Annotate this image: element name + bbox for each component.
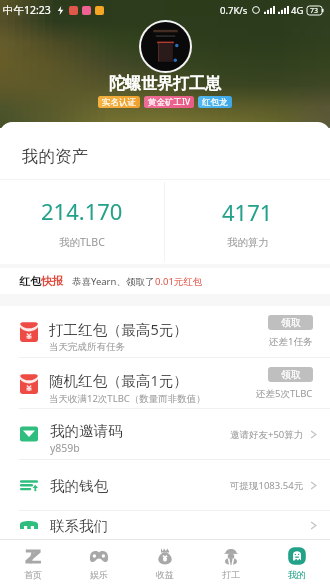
button[interactable]: 实名认证 (102, 96, 136, 108)
staticText: 恭喜Yearn、领取了 (72, 275, 155, 288)
staticText: 我的TLBC (59, 235, 105, 249)
button[interactable]: 4171 (165, 180, 330, 264)
button[interactable]: Profile avatar (141, 22, 190, 71)
staticText: 我的算力 (227, 236, 269, 249)
staticText: 打工红包（最高5元） (49, 319, 188, 339)
staticText: 首页 (24, 569, 42, 580)
staticText: 214.170 (41, 196, 123, 226)
staticText: 打工 (222, 569, 240, 580)
staticText: 随机红包（最高1元） (49, 370, 188, 390)
button[interactable]: 领取 (268, 367, 313, 382)
staticText: 娱乐 (90, 569, 108, 580)
staticText: 邀请好友+50算力 (230, 428, 304, 441)
staticText: 红包龙 (202, 97, 228, 108)
button[interactable]: 红包 (19, 268, 318, 294)
staticText: 0.01元红包 (155, 275, 203, 288)
staticText: 还差1任务 (269, 335, 313, 348)
staticText: 黄金矿工IV (148, 96, 190, 108)
button[interactable]: 我的邀请码 (20, 409, 317, 459)
staticText: 4171 (222, 197, 273, 227)
staticText: 4G (291, 4, 304, 17)
button[interactable]: 收益 (132, 540, 198, 584)
staticText: 当天收满12次TLBC（数量而非数值） (49, 392, 206, 405)
button[interactable]: 首页 (0, 540, 66, 584)
button[interactable]: 214.170 (0, 180, 164, 264)
staticText: 实名认证 (102, 97, 136, 108)
staticText: 陀螺世界打工崽 (0, 74, 330, 94)
staticText: 我的邀请码 (50, 422, 123, 440)
staticText: 0.7K/s (220, 4, 248, 17)
button[interactable]: 我的钱包 (20, 460, 317, 510)
staticText: 我的资产 (22, 146, 88, 167)
button[interactable]: 领取 (268, 315, 313, 330)
staticText: 红包 (19, 274, 41, 288)
staticText: y859b (50, 441, 80, 455)
staticText: 中午12:23 (3, 3, 51, 17)
staticText: 可提现1083.54元 (230, 479, 304, 492)
button[interactable]: 联系我们 (20, 511, 317, 539)
button[interactable]: 娱乐 (66, 540, 132, 584)
button[interactable]: 黄金矿工IV (148, 96, 190, 108)
button[interactable]: 红包龙 (202, 96, 228, 108)
button[interactable]: 随机红包（最高1元） (20, 358, 313, 408)
staticText: 联系我们 (50, 517, 108, 535)
staticText: 还差5次TLBC (256, 387, 313, 400)
button[interactable]: 打工红包（最高5元） (20, 306, 313, 357)
staticText: 收益 (156, 569, 174, 580)
staticText: 领取 (281, 316, 301, 329)
staticText: 73 (310, 6, 319, 15)
staticText: 领取 (281, 368, 301, 381)
staticText: 我的 (288, 569, 306, 580)
staticText: 快报 (41, 274, 63, 288)
staticText: 当天完成所有任务 (49, 341, 125, 353)
staticText: 我的钱包 (50, 477, 108, 495)
button[interactable]: 打工 (198, 540, 264, 584)
button[interactable]: 我的 (264, 540, 330, 584)
